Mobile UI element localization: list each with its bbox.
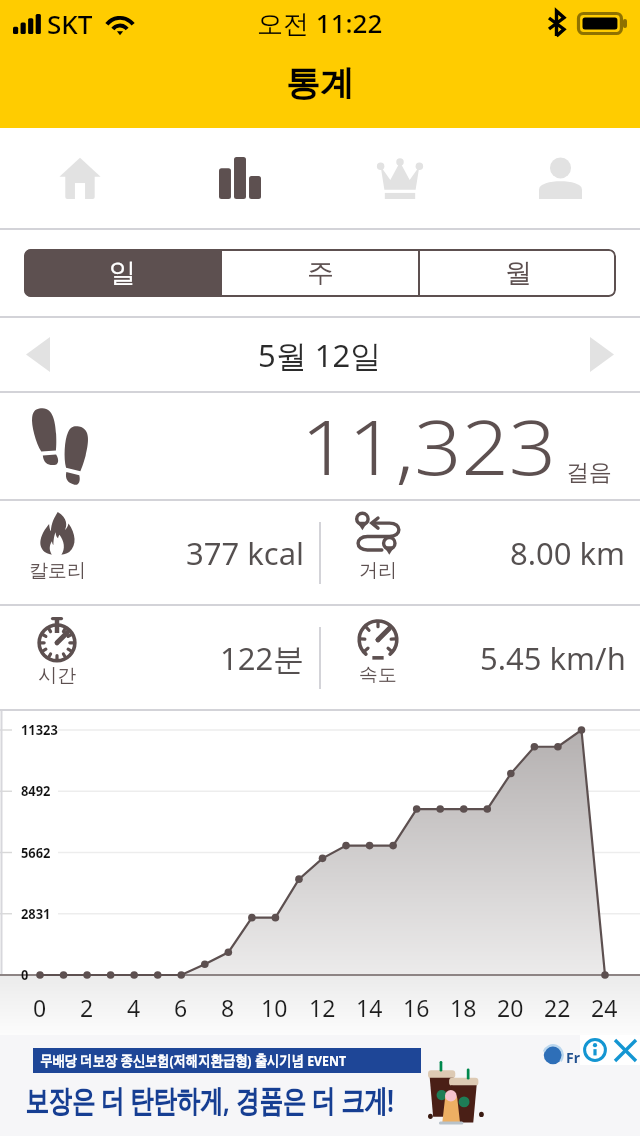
staticText: 8 (221, 992, 235, 1023)
button[interactable]: 시간 (0, 606, 319, 709)
button[interactable]: Close ad (610, 1035, 640, 1065)
button[interactable]: 월 (420, 249, 616, 297)
staticText: 377 kcal (186, 532, 305, 574)
button[interactable]: 거리 (321, 501, 640, 604)
button[interactable]: Profile (480, 128, 640, 228)
staticText: 무배당 더보장 종신보험(저해지환급형) 출시기념 EVENT (40, 1050, 347, 1070)
button[interactable]: Ranking (320, 128, 480, 228)
staticText: 4 (127, 992, 141, 1023)
staticText: 2 (80, 992, 94, 1023)
staticText: 12 (309, 992, 336, 1023)
staticText: 16 (403, 992, 430, 1023)
staticText: SKT (47, 6, 93, 41)
button[interactable]: 주 (222, 249, 418, 297)
staticText: 10 (261, 992, 288, 1023)
staticText: 보장은 더 탄탄하게, 경품은 더 크게! (25, 1079, 394, 1121)
button[interactable]: 칼로리 (0, 501, 319, 604)
staticText: 5662 (21, 843, 51, 862)
staticText: 5월 12일 (258, 334, 382, 376)
staticText: 칼로리 (29, 559, 86, 583)
button[interactable]: Next day (564, 318, 640, 391)
staticText: 20 (497, 992, 524, 1023)
staticText: 122분 (220, 637, 305, 679)
button[interactable]: Ad information (580, 1035, 610, 1065)
staticText: 6 (174, 992, 188, 1023)
staticText: 11,323 (301, 394, 557, 498)
staticText: 거리 (359, 559, 397, 583)
button[interactable]: 무배당 더보장 종신보험(저해지환급형) 출시기념 EVENT (0, 1035, 640, 1136)
staticText: 시간 (38, 664, 76, 688)
staticText: 주 (307, 256, 334, 290)
staticText: 2831 (21, 904, 51, 923)
button[interactable]: Home (0, 128, 160, 228)
staticText: Fr (566, 1048, 580, 1067)
staticText: 월 (505, 256, 532, 290)
staticText: 오전 11:22 (257, 5, 383, 41)
button[interactable]: 일 (24, 249, 220, 297)
staticText: 통계 (286, 62, 354, 105)
button[interactable]: Previous day (0, 318, 76, 391)
button[interactable]: 11323 (0, 711, 640, 1035)
staticText: 18 (450, 992, 477, 1023)
staticText: 0 (33, 992, 47, 1023)
staticText: 11323 (21, 720, 59, 739)
staticText: 14 (356, 992, 383, 1023)
staticText: 0 (21, 965, 29, 984)
button[interactable]: 11,323 (0, 393, 640, 499)
button[interactable]: 속도 (321, 606, 640, 709)
staticText: 속도 (359, 663, 397, 687)
staticText: 일 (109, 256, 136, 290)
staticText: 걸음 (566, 458, 612, 487)
button[interactable]: Statistics (160, 128, 320, 228)
staticText: 8492 (21, 781, 51, 800)
staticText: 8.00 km (510, 532, 626, 574)
staticText: 24 (591, 992, 618, 1023)
staticText: 5.45 km/h (480, 637, 626, 679)
staticText: 22 (544, 992, 571, 1023)
